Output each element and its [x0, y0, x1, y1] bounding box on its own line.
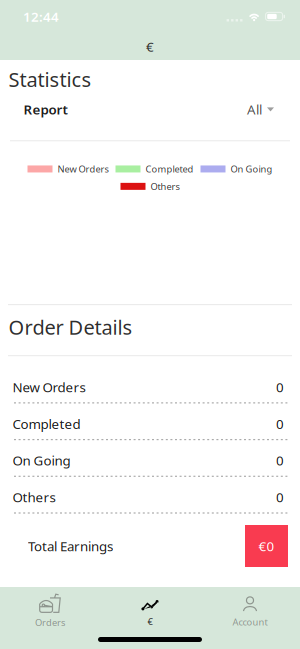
- staticText: All: [247, 101, 262, 118]
- staticText: Completed: [12, 415, 80, 433]
- staticText: Orders: [35, 616, 65, 629]
- staticText: Statistics: [8, 66, 91, 93]
- staticText: Account: [232, 616, 267, 628]
- button[interactable]: Orders: [0, 589, 100, 633]
- staticText: Total Earnings: [28, 537, 113, 555]
- button[interactable]: €0: [245, 525, 288, 567]
- button[interactable]: Account: [200, 589, 300, 633]
- staticText: Others: [12, 488, 55, 506]
- staticText: On Going: [230, 163, 272, 175]
- button[interactable]: Earnings: [100, 589, 200, 633]
- staticText: Order Details: [8, 314, 132, 340]
- staticText: 0: [276, 378, 284, 396]
- staticText: On Going: [12, 452, 70, 469]
- staticText: €: [146, 38, 154, 55]
- staticText: 0: [276, 488, 284, 506]
- staticText: Report: [23, 101, 67, 118]
- staticText: 0: [276, 452, 284, 469]
- staticText: New Orders: [12, 378, 85, 396]
- staticText: €0: [258, 537, 274, 555]
- staticText: €: [147, 615, 152, 628]
- button[interactable]: Report: [0, 101, 300, 118]
- staticText: Others: [150, 180, 179, 193]
- staticText: 0: [276, 415, 284, 433]
- staticText: New Orders: [57, 163, 108, 175]
- staticText: Completed: [145, 163, 193, 175]
- staticText: 12:44: [23, 8, 59, 25]
